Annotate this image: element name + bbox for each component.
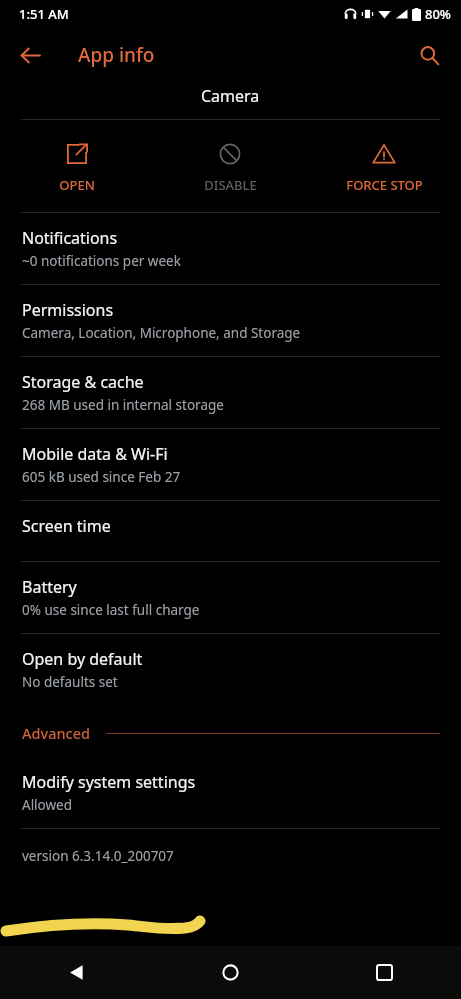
button[interactable]: Notifications xyxy=(0,213,461,284)
staticText: 1:51 AM xyxy=(19,5,69,23)
staticText: Permissions xyxy=(22,299,114,321)
staticText: Notifications xyxy=(22,227,118,249)
staticText: Mobile data & Wi-Fi xyxy=(22,443,168,465)
staticText: FORCE STOP xyxy=(346,176,423,194)
staticText: Advanced xyxy=(22,723,90,743)
staticText: App info xyxy=(78,42,155,68)
button[interactable]: Back xyxy=(0,946,153,999)
staticText: 268 MB used in internal storage xyxy=(22,396,224,414)
staticText: 605 kB used since Feb 27 xyxy=(22,468,181,486)
button[interactable]: Storage & cache xyxy=(0,357,461,428)
staticText: ~0 notifications per week xyxy=(22,252,181,270)
staticText: Open by default xyxy=(22,648,143,670)
button[interactable]: FORCE STOP xyxy=(307,120,461,194)
button[interactable]: Battery xyxy=(0,562,461,633)
staticText: No defaults set xyxy=(22,673,118,691)
staticText: Modify system settings xyxy=(22,771,196,793)
staticText: Screen time xyxy=(22,515,111,537)
staticText: version 6.3.14.0_200707 xyxy=(22,847,174,865)
staticText: 80% xyxy=(425,5,451,23)
button[interactable]: Search xyxy=(407,33,451,77)
button[interactable]: Mobile data & Wi-Fi xyxy=(0,429,461,500)
button[interactable]: Permissions xyxy=(0,285,461,356)
button[interactable]: Back xyxy=(8,33,52,77)
button[interactable]: Modify system settings xyxy=(0,757,461,828)
button[interactable]: OPEN xyxy=(0,120,153,194)
staticText: OPEN xyxy=(59,176,95,194)
button[interactable]: DISABLE xyxy=(153,120,307,194)
staticText: Allowed xyxy=(22,796,73,814)
staticText: 0% use since last full charge xyxy=(22,601,200,619)
staticText: Storage & cache xyxy=(22,371,144,393)
staticText: Camera, Location, Microphone, and Storag… xyxy=(22,324,301,342)
staticText: DISABLE xyxy=(204,176,257,194)
button[interactable]: Home xyxy=(153,946,307,999)
button[interactable]: Open by default xyxy=(0,634,461,705)
button[interactable]: Screen time xyxy=(0,501,461,561)
staticText: Battery xyxy=(22,576,77,598)
button[interactable]: Recent apps xyxy=(307,946,461,999)
staticText: Camera xyxy=(201,85,260,107)
